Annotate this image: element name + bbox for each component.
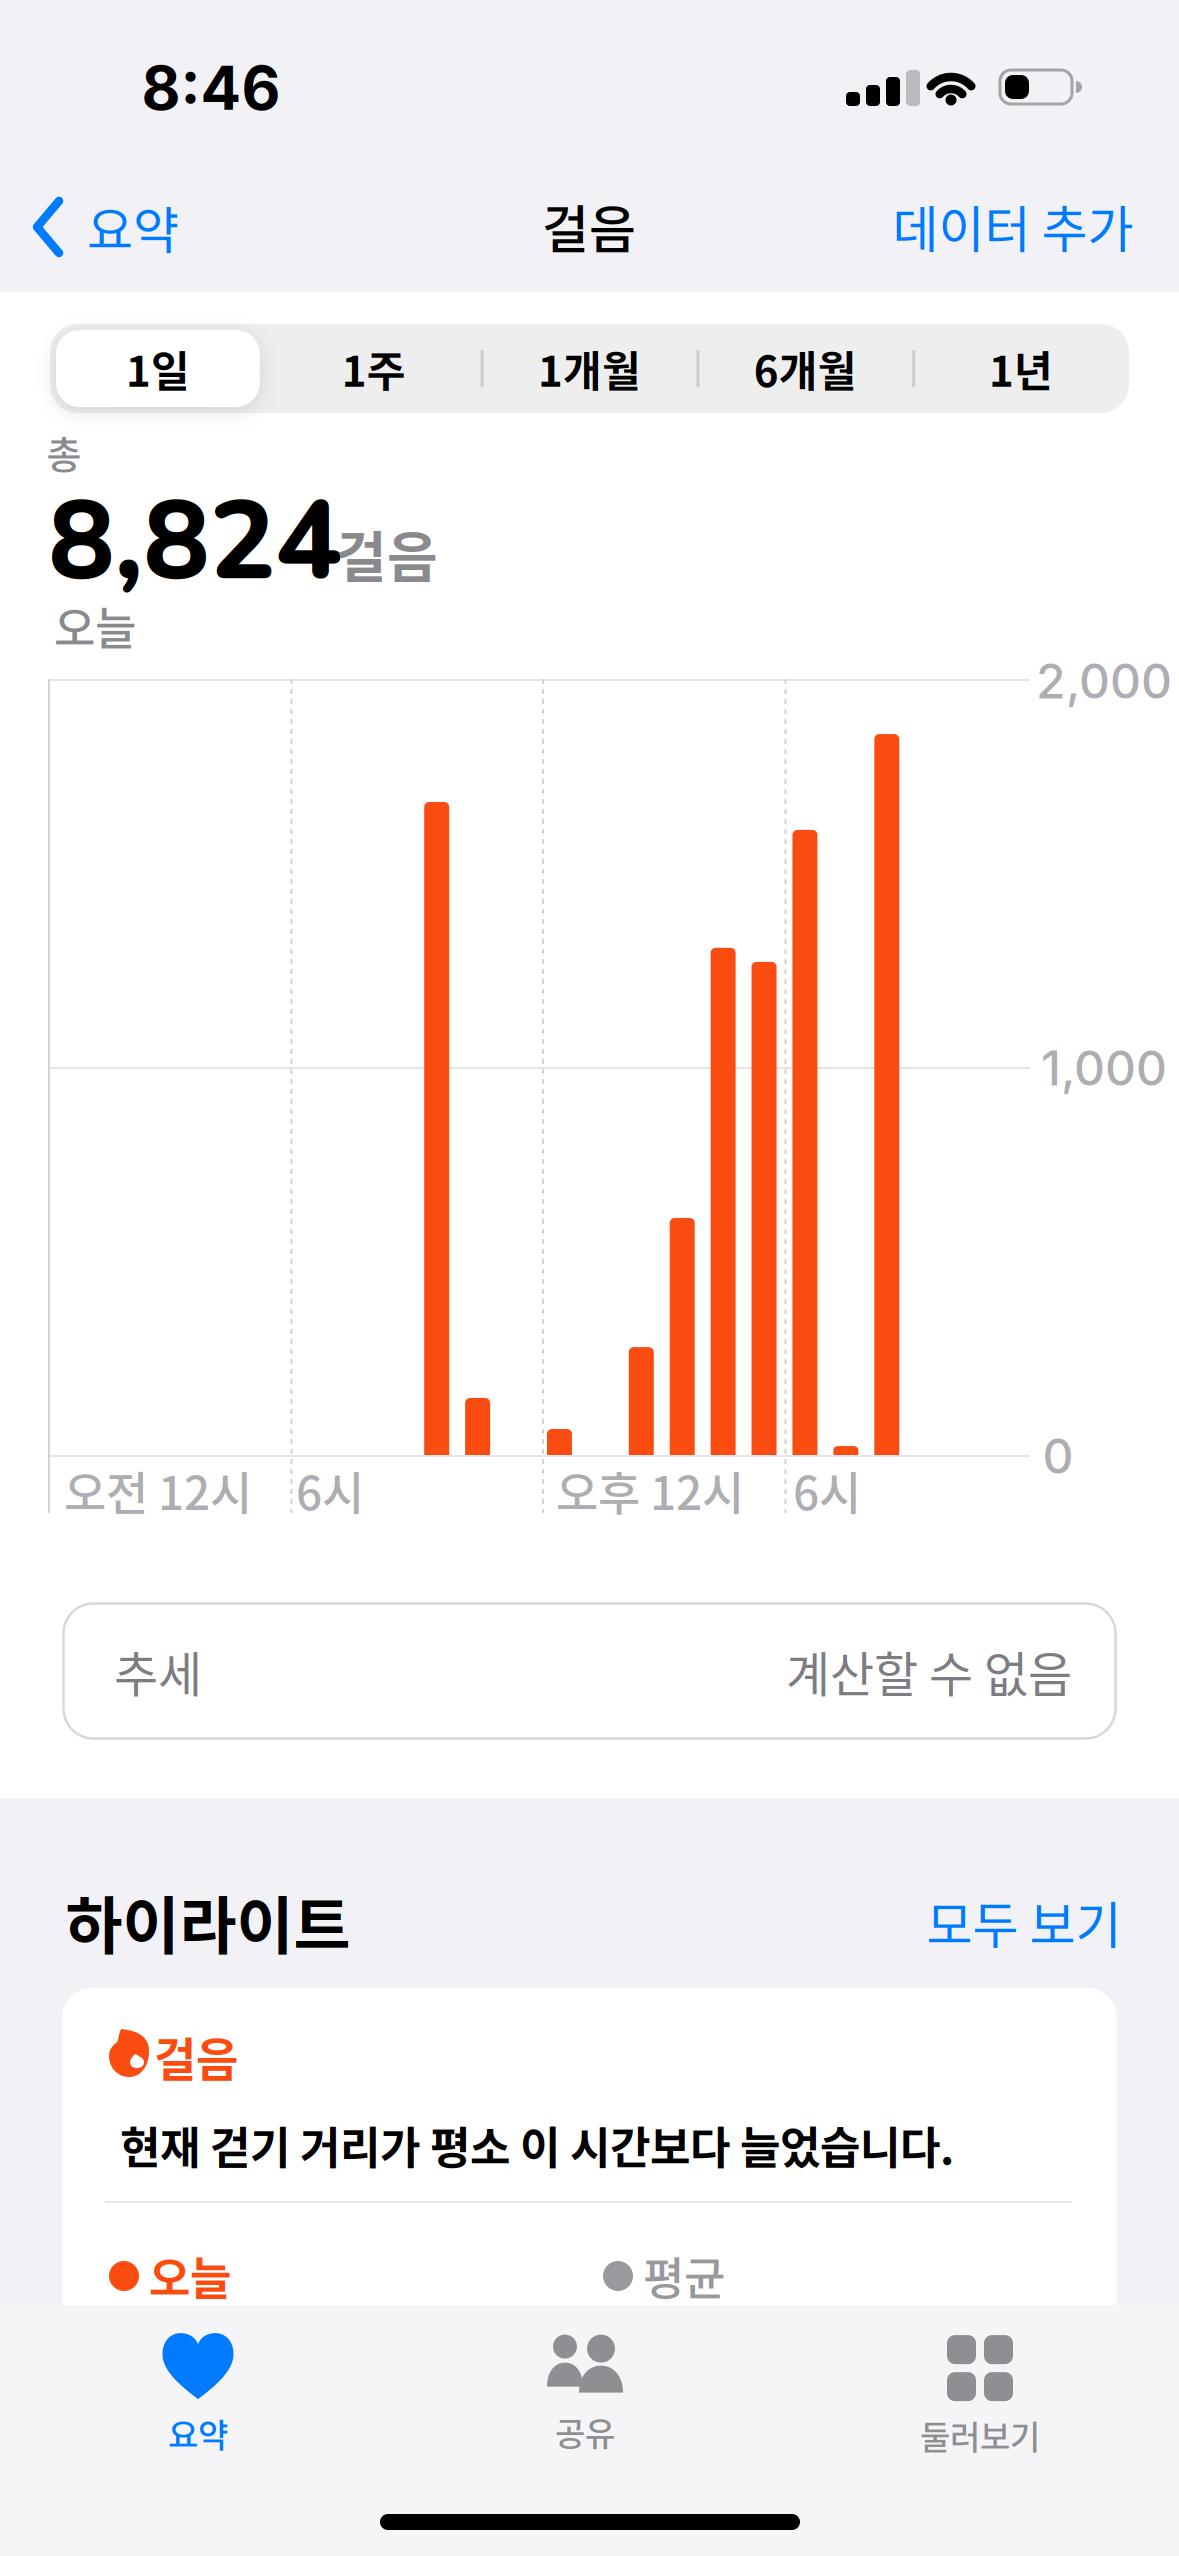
staticText: 1년 <box>989 338 1053 399</box>
button[interactable]: 1년 <box>914 324 1129 413</box>
staticText: 오늘 <box>149 2243 231 2309</box>
staticText: 요약 <box>87 191 179 263</box>
button[interactable]: 모두 보기 <box>926 1886 1121 1958</box>
staticText: 오전 12시 <box>64 1457 252 1523</box>
staticText: 6개월 <box>754 338 857 399</box>
staticText: 걸음 <box>542 189 636 263</box>
staticText: 오후 12시 <box>556 1457 744 1523</box>
staticText: 공유 <box>555 2408 615 2455</box>
staticText: 하이라이트 <box>65 1877 350 1967</box>
staticText: 1개월 <box>538 338 641 399</box>
staticText: 걸음 <box>336 513 438 593</box>
staticText: 총 <box>46 424 81 479</box>
button[interactable]: 추세 <box>62 1602 1117 1740</box>
staticText: 모두 보기 <box>926 1886 1121 1958</box>
staticText: 8,824 <box>48 466 341 616</box>
staticText: 걸음 <box>154 2023 238 2089</box>
staticText: 1일 <box>126 338 190 399</box>
staticText: 둘러보기 <box>920 2411 1040 2459</box>
staticText: 현재 걷기 거리가 평소 이 시간보다 늘었습니다. <box>120 2113 954 2177</box>
button[interactable]: 데이터 추가 <box>892 190 1133 262</box>
button[interactable]: 공유 <box>435 2320 735 2470</box>
button[interactable]: 둘러보기 <box>830 2322 1130 2472</box>
staticText: 오늘 <box>54 593 136 659</box>
button[interactable]: 1주 <box>266 324 481 413</box>
staticText: 0 <box>1042 1427 1073 1485</box>
staticText: 8:46 <box>141 52 280 124</box>
button[interactable]: 요약 <box>33 191 179 263</box>
staticText: 6시 <box>793 1457 861 1523</box>
staticText: 데이터 추가 <box>892 190 1133 262</box>
button[interactable]: 요약 <box>48 2320 348 2470</box>
button[interactable]: 걸음 <box>62 1988 1117 2340</box>
staticText: 1주 <box>342 338 406 399</box>
staticText: 요약 <box>168 2409 228 2457</box>
staticText: 1,000 <box>1041 1039 1167 1097</box>
staticText: 추세 <box>114 1636 202 1706</box>
button[interactable]: 1개월 <box>482 324 697 413</box>
staticText: 6시 <box>296 1457 364 1523</box>
staticText: 계산할 수 없음 <box>786 1636 1072 1706</box>
button[interactable]: 6개월 <box>698 324 913 413</box>
staticText: 2,000 <box>1036 652 1172 710</box>
staticText: 평균 <box>643 2243 725 2309</box>
button[interactable]: 1일 <box>50 324 265 413</box>
